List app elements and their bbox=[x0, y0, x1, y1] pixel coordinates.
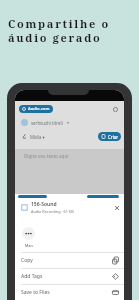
staticText: Compartilhe o áudio gerado bbox=[8, 16, 110, 45]
button[interactable]: Criar bbox=[98, 132, 121, 141]
staticText: Criar bbox=[108, 134, 119, 140]
button[interactable]: Copy bbox=[15, 252, 124, 268]
staticText: Add Tags bbox=[21, 273, 43, 280]
button[interactable]: Close bbox=[113, 204, 121, 212]
staticText: Save to Files bbox=[21, 289, 50, 296]
button[interactable]: Dark mode bbox=[112, 106, 119, 113]
staticText: serhsushi titreli bbox=[31, 120, 63, 126]
staticText: ▾ bbox=[67, 120, 70, 125]
button[interactable]: Save to Files bbox=[15, 284, 124, 300]
button[interactable]: serhsushi titreli bbox=[21, 119, 119, 126]
staticText: Mídia ▾ bbox=[30, 134, 45, 140]
staticText: Mais bbox=[25, 243, 33, 248]
button[interactable]: Mais bbox=[22, 227, 35, 248]
staticText: Digite seu texto aqui bbox=[24, 153, 69, 159]
button[interactable]: Add Tags bbox=[15, 268, 124, 284]
staticText: Audio.com bbox=[28, 106, 50, 112]
staticText: 156-Sound bbox=[31, 201, 57, 208]
staticText: Copy bbox=[21, 257, 33, 264]
button[interactable]: Audio.com bbox=[19, 105, 53, 113]
staticText: Audio Recording · 61 KB bbox=[31, 209, 74, 214]
